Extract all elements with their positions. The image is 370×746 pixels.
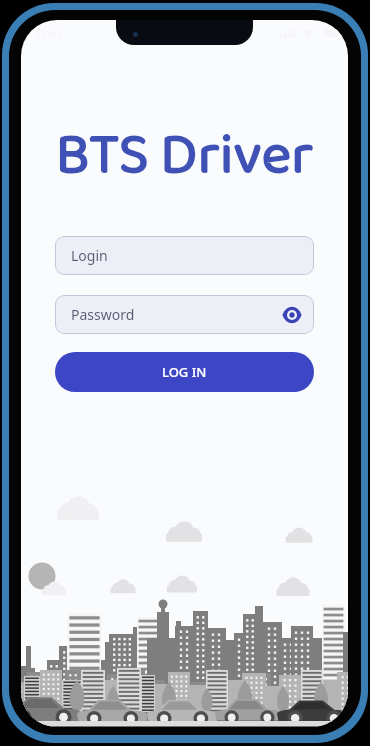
button[interactable]: Password: [55, 295, 314, 334]
button[interactable]: Login: [55, 236, 314, 275]
staticText: 12:45: [35, 26, 64, 41]
staticText: Password: [71, 305, 135, 324]
staticText: BTS Driver: [21, 111, 348, 202]
button[interactable]: LOG IN: [55, 352, 314, 392]
staticText: Login: [71, 246, 108, 265]
button[interactable]: Show password: [279, 302, 305, 328]
staticText: LOG IN: [162, 363, 207, 381]
